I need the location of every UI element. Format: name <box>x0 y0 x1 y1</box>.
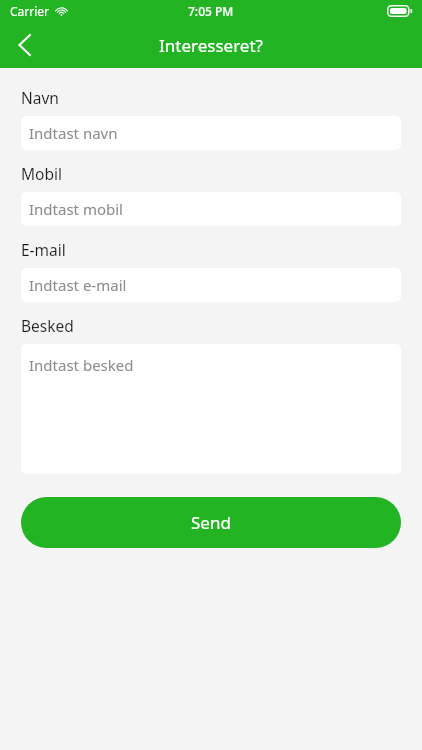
button[interactable]: Back <box>0 22 48 68</box>
staticText: Mobil <box>21 163 62 184</box>
button[interactable]: Indtast mobil <box>21 192 401 226</box>
staticText: Navn <box>21 87 59 108</box>
button[interactable]: Indtast navn <box>21 116 401 150</box>
button[interactable]: Indtast besked <box>21 344 401 474</box>
staticText: Interesseret? <box>159 34 263 57</box>
staticText: Indtast navn <box>29 123 118 143</box>
staticText: Indtast mobil <box>29 199 123 219</box>
staticText: Indtast e-mail <box>29 275 127 295</box>
button[interactable]: Send <box>21 497 401 548</box>
staticText: Indtast besked <box>29 355 134 375</box>
staticText: Carrier <box>10 3 50 19</box>
staticText: Besked <box>21 315 74 336</box>
staticText: E-mail <box>21 239 66 260</box>
staticText: Send <box>191 511 231 534</box>
staticText: 7:05 PM <box>188 3 234 19</box>
button[interactable]: Indtast e-mail <box>21 268 401 302</box>
